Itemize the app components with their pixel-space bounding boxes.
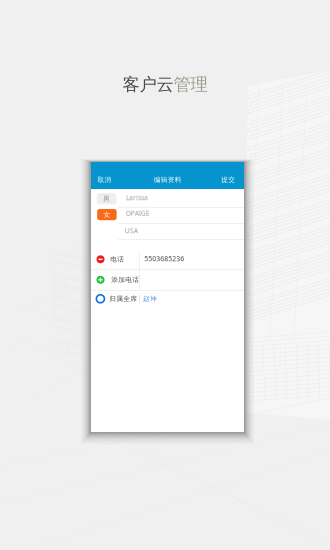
staticText: OPAIGE — [126, 209, 150, 218]
staticText: 取消 — [98, 176, 112, 184]
staticText: 电话 — [110, 255, 124, 263]
staticText: Larissa — [126, 193, 148, 202]
staticText: 5503685236 — [144, 254, 184, 263]
staticText: 编辑资料 — [154, 176, 182, 184]
staticText: 添加电话 — [111, 276, 139, 284]
staticText: 客户云 — [122, 74, 173, 95]
button[interactable]: 添加电话 — [111, 276, 139, 284]
button[interactable]: 取消 — [91, 166, 118, 193]
button[interactable]: 赵坤 — [143, 295, 157, 303]
staticText: 管理 — [173, 74, 207, 95]
staticText: 提交 — [221, 176, 235, 184]
staticText: USA — [125, 226, 138, 235]
staticText: 赵坤 — [143, 295, 157, 303]
staticText: 女 — [103, 210, 110, 219]
button[interactable]: 提交 — [215, 166, 242, 193]
staticText: 男 — [103, 195, 110, 203]
staticText: 归属全席 — [109, 295, 137, 303]
